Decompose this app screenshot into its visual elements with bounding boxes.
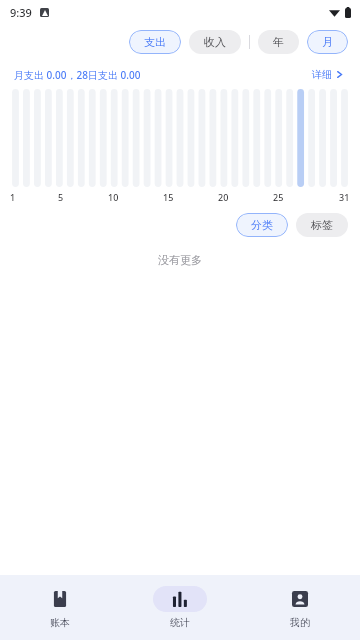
staticText: 1 [10,191,16,203]
staticText: 统计 [170,616,190,629]
staticText: 分类 [251,218,273,232]
staticText: 详细 [312,68,332,81]
button[interactable]: 月 [307,30,348,54]
staticText: 支出 [144,35,166,49]
button[interactable]: 统计 [120,580,240,635]
staticText: 收入 [204,35,226,49]
other: 统计 [172,591,188,607]
button[interactable]: 分类 [236,213,288,237]
staticText: 月 [322,35,333,49]
staticText: 月支出 0.00，28日支出 0.00 [14,68,141,82]
staticText: 年 [273,35,284,49]
staticText: 5 [58,191,64,203]
button[interactable]: 年 [258,30,299,54]
staticText: 我的 [290,616,310,629]
other: 账本 [52,591,68,607]
button[interactable]: 支出 [129,30,181,54]
button[interactable]: 收入 [189,30,241,54]
button[interactable]: 我的 [240,580,360,635]
other: 我的 [292,591,308,607]
button[interactable]: 详细 [310,66,346,83]
button[interactable]: 账本 [0,580,120,635]
staticText: 31 [339,191,350,203]
staticText: 9:39 [10,5,32,20]
staticText: 25 [273,191,284,203]
button[interactable]: 标签 [296,213,348,237]
staticText: 没有更多 [0,253,360,267]
staticText: 账本 [50,616,70,629]
staticText: 10 [108,191,119,203]
staticText: 20 [218,191,229,203]
staticText: 15 [163,191,174,203]
staticText: 标签 [311,218,333,232]
